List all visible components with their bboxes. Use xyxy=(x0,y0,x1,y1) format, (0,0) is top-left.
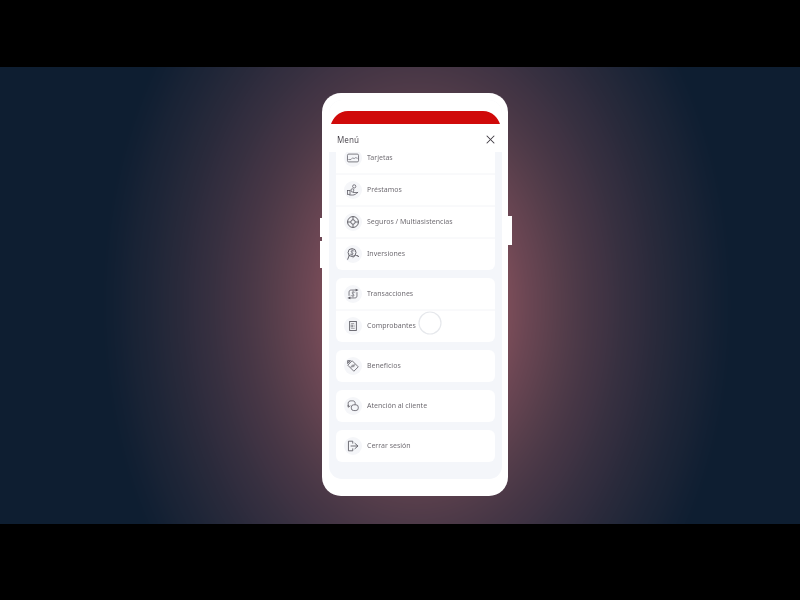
button[interactable]: Seguros / Multiasistencias xyxy=(336,206,495,238)
staticText: Cerrar sesión xyxy=(367,441,411,451)
staticText: Transacciones xyxy=(367,289,414,299)
staticText: Beneficios xyxy=(367,361,401,371)
staticText: Tarjetas xyxy=(367,153,393,163)
button[interactable]: Comprobantes xyxy=(336,310,495,342)
button[interactable]: Cerrar xyxy=(483,132,497,146)
button[interactable]: Inversiones xyxy=(336,238,495,270)
staticText: Atención al cliente xyxy=(367,401,428,411)
button[interactable]: Beneficios xyxy=(336,350,495,382)
staticText: Seguros / Multiasistencias xyxy=(367,217,453,227)
button[interactable]: Atención al cliente xyxy=(336,390,495,422)
staticText: Préstamos xyxy=(367,185,402,195)
button[interactable]: Tarjetas xyxy=(336,152,495,174)
staticText: Menú xyxy=(337,134,359,145)
button[interactable]: Préstamos xyxy=(336,174,495,206)
staticText: Inversiones xyxy=(367,249,406,259)
staticText: Comprobantes xyxy=(367,321,416,331)
button[interactable]: Cerrar sesión xyxy=(336,430,495,462)
button[interactable]: Transacciones xyxy=(336,278,495,310)
